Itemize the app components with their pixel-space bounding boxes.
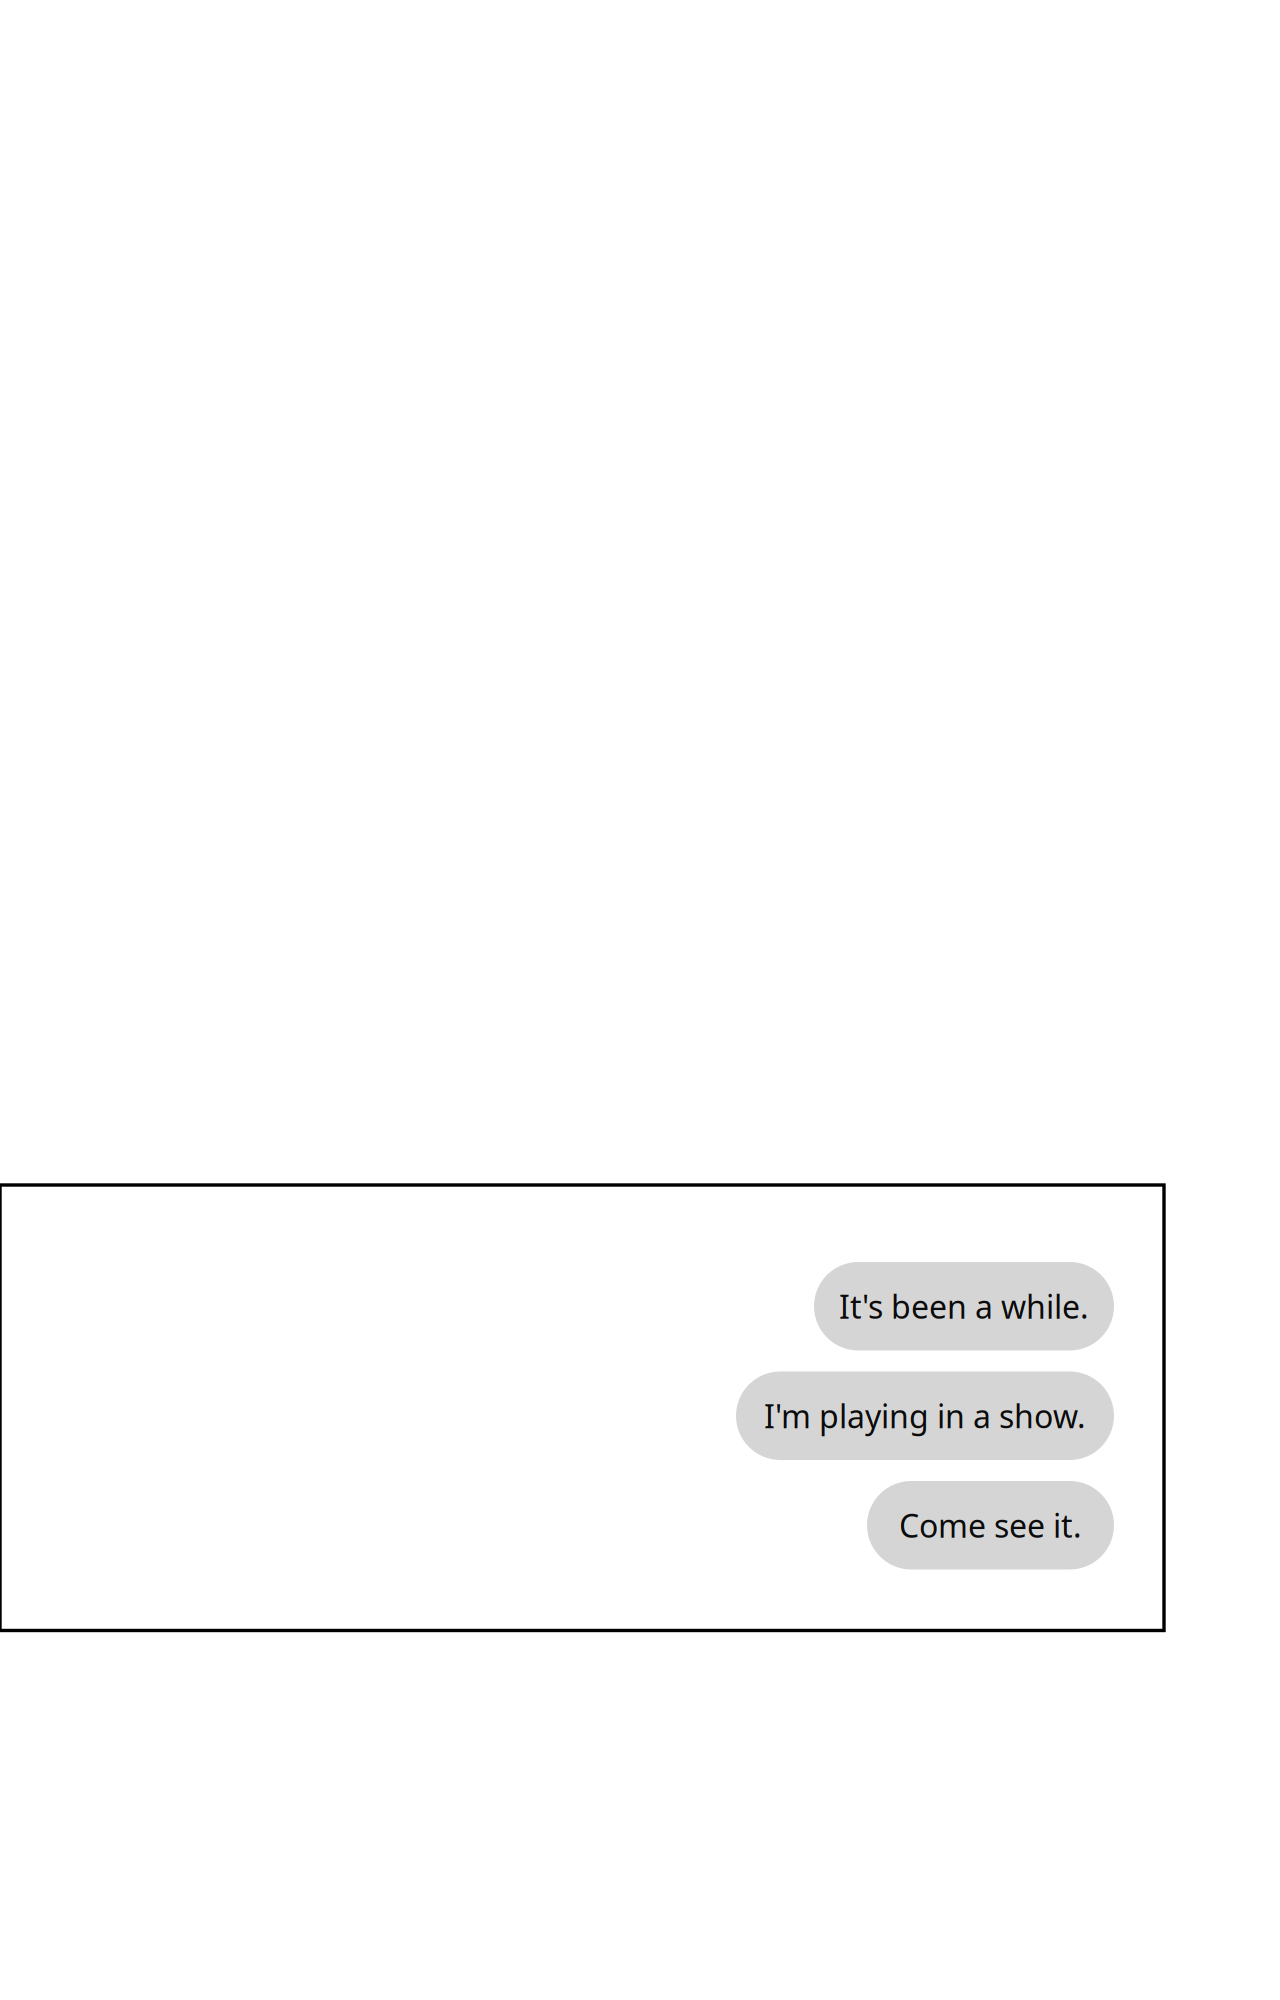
button[interactable]: I'm playing in a show. xyxy=(736,1371,1114,1460)
button[interactable]: Come see it. xyxy=(867,1481,1114,1569)
staticText: Come see it. xyxy=(899,1504,1082,1546)
staticText: It's been a while. xyxy=(839,1285,1089,1327)
staticText: I'm playing in a show. xyxy=(764,1394,1086,1437)
button[interactable]: It's been a while. xyxy=(814,1262,1114,1350)
